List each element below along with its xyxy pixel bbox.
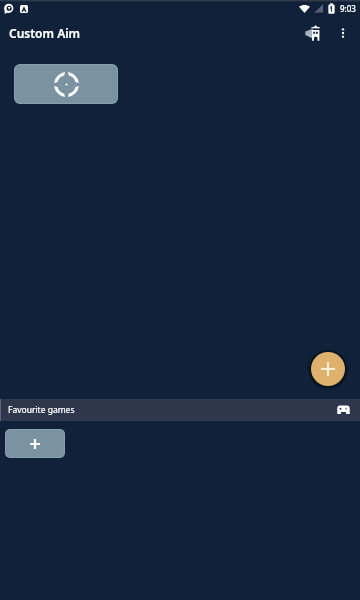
- staticText: Custom Aim: [9, 25, 81, 41]
- staticText: Favourite games: [8, 404, 75, 416]
- button[interactable]: Favourite games: [0, 399, 360, 421]
- button[interactable]: Aim target: [14, 64, 118, 104]
- button[interactable]: Add: [309, 350, 347, 388]
- staticText: 9:03: [340, 3, 356, 14]
- button[interactable]: Add game: [5, 429, 65, 458]
- button[interactable]: Assistant: [298, 18, 328, 48]
- button[interactable]: More options: [328, 18, 358, 48]
